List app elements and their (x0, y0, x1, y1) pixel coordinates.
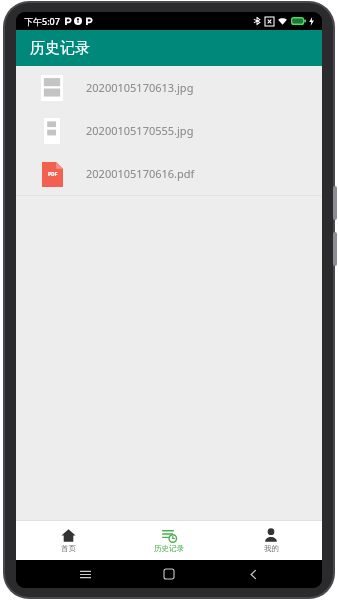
staticText: 下午5:07 (24, 15, 60, 27)
button[interactable]: PDF (16, 152, 322, 195)
staticText: 我的 (264, 544, 279, 553)
staticText: 历史记录 (30, 39, 90, 58)
button[interactable]: 20200105170555.jpg (16, 109, 322, 152)
button[interactable]: Recents (70, 560, 100, 588)
button[interactable]: 历史记录 (119, 520, 219, 560)
staticText: 20200105170555.jpg (86, 123, 194, 138)
button[interactable]: Back (238, 560, 268, 588)
staticText: 历史记录 (154, 544, 184, 553)
staticText: PDF (48, 171, 58, 178)
button[interactable]: 我的 (221, 520, 321, 560)
staticText: 20200105170616.pdf (86, 166, 195, 181)
button[interactable]: 首页 (18, 520, 118, 560)
staticText: 首页 (61, 544, 76, 553)
button[interactable]: Home (154, 560, 184, 588)
staticText: 20200105170613.jpg (86, 80, 194, 95)
button[interactable]: 20200105170613.jpg (16, 66, 322, 109)
